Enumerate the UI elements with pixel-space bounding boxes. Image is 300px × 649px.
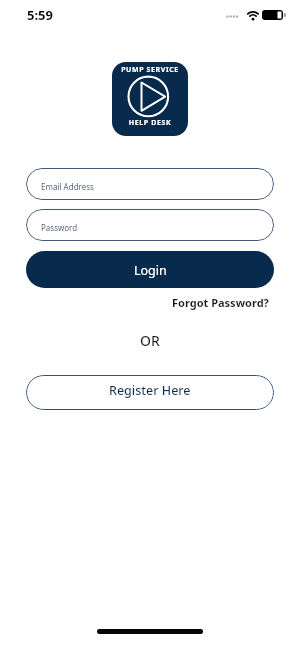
button[interactable]: Password	[26, 209, 274, 241]
staticText: HELP DESK	[112, 118, 188, 128]
button[interactable]: Forgot Password?	[172, 295, 269, 310]
staticText: PUMP SERVICE	[112, 65, 188, 75]
button[interactable]: Register Here	[26, 375, 274, 410]
button[interactable]: Login	[26, 251, 274, 288]
button[interactable]: Email Address	[26, 168, 274, 200]
staticText: Login	[134, 262, 167, 279]
staticText: Password	[41, 222, 78, 233]
staticText: Email Address	[41, 181, 94, 192]
staticText: OR	[140, 331, 160, 350]
staticText: Register Here	[109, 382, 191, 399]
staticText: 5:59	[27, 6, 53, 24]
